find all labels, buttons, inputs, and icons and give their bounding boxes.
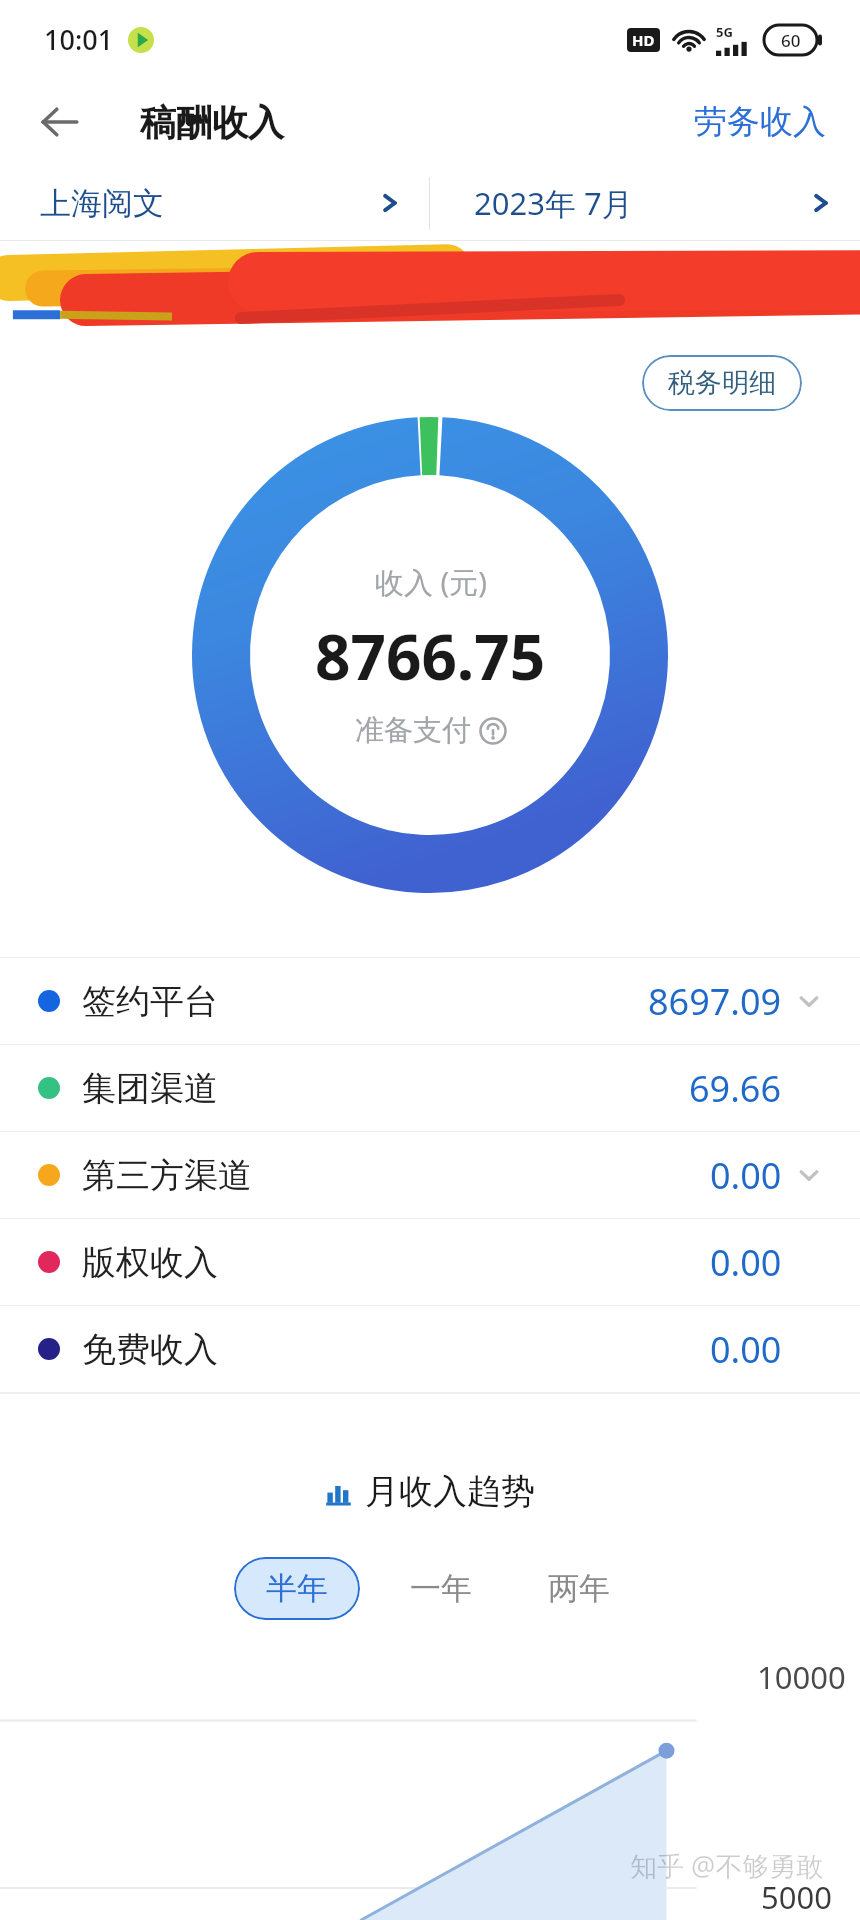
button[interactable]: 第三方渠道 xyxy=(0,1132,860,1218)
staticText: 0.00 xyxy=(710,1238,782,1287)
button[interactable]: 上海阅文 xyxy=(0,166,429,240)
button[interactable]: Back xyxy=(28,90,92,154)
staticText: 0.00 xyxy=(710,1151,782,1200)
staticText: 免费收入 xyxy=(82,1328,218,1371)
staticText: 签约平台 xyxy=(82,980,218,1023)
staticText: 税务明细 xyxy=(668,366,776,400)
staticText: 10:01 xyxy=(44,21,114,58)
staticText: 8766.75 xyxy=(315,614,546,698)
staticText: 半年 xyxy=(266,1569,328,1608)
staticText: 第三方渠道 xyxy=(82,1154,252,1197)
staticText: 集团渠道 xyxy=(82,1067,218,1110)
staticText: 一年 xyxy=(410,1569,472,1608)
button[interactable]: 签约平台 xyxy=(0,958,860,1044)
button[interactable]: 2023年 7月 xyxy=(430,166,860,240)
staticText: 月收入趋势 xyxy=(365,1470,535,1513)
staticText: 准备支付 xyxy=(355,712,471,749)
button[interactable]: 版权收入 xyxy=(0,1219,860,1305)
button[interactable]: 集团渠道 xyxy=(0,1045,860,1131)
staticText: 收入 (元) xyxy=(375,562,487,602)
staticText: 60 xyxy=(781,29,801,52)
staticText: 8697.09 xyxy=(648,977,782,1026)
staticText: 5000 xyxy=(761,1876,832,1918)
staticText: 版权收入 xyxy=(82,1241,218,1284)
button[interactable]: 免费收入 xyxy=(0,1306,860,1392)
staticText: 5G xyxy=(716,23,733,41)
staticText: 劳务收入 xyxy=(694,101,826,143)
button[interactable]: 半年 xyxy=(234,1557,360,1620)
staticText: 稿酬收入 xyxy=(140,100,284,145)
button[interactable]: 劳务收入 xyxy=(688,95,832,149)
button[interactable]: 两年 xyxy=(532,1557,626,1620)
button[interactable]: 一年 xyxy=(394,1557,488,1620)
staticText: 2023年 7月 xyxy=(474,182,633,224)
staticText: HD xyxy=(632,30,655,50)
staticText: 知乎 @不够勇敢 xyxy=(630,1847,824,1884)
staticText: 10000 xyxy=(757,1656,846,1698)
staticText: 69.66 xyxy=(689,1064,782,1113)
button[interactable]: 税务明细 xyxy=(642,355,802,411)
staticText: 0.00 xyxy=(710,1325,782,1374)
staticText: 上海阅文 xyxy=(40,184,164,223)
staticText: 两年 xyxy=(548,1569,610,1608)
